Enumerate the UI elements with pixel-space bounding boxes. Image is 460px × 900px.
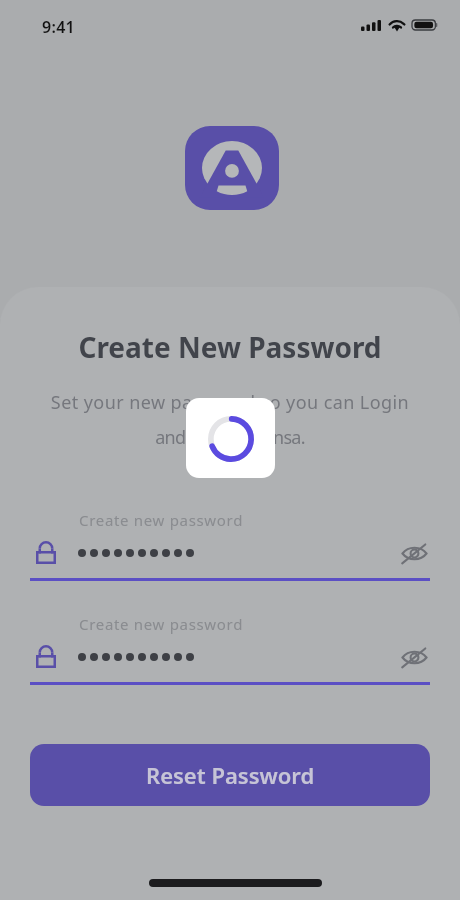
staticText: Create new password: [79, 614, 244, 634]
staticText: Set your new password so you can Login: [0, 390, 460, 415]
staticText: Reset Password: [146, 760, 315, 790]
other: Battery: [412, 20, 438, 30]
other: Wi-Fi: [388, 20, 406, 31]
other: Password: [36, 541, 56, 564]
other: Cellular signal: [361, 20, 381, 31]
button[interactable]: Show password: [401, 543, 428, 564]
staticText: Create New Password: [0, 328, 460, 366]
button[interactable]: Reset Password: [30, 744, 430, 806]
staticText: 9:41: [42, 16, 76, 38]
staticText: Create new password: [79, 510, 244, 530]
staticText: and access Moinsa.: [0, 425, 460, 450]
button[interactable]: Show password: [401, 647, 428, 668]
other: Password: [36, 645, 56, 668]
